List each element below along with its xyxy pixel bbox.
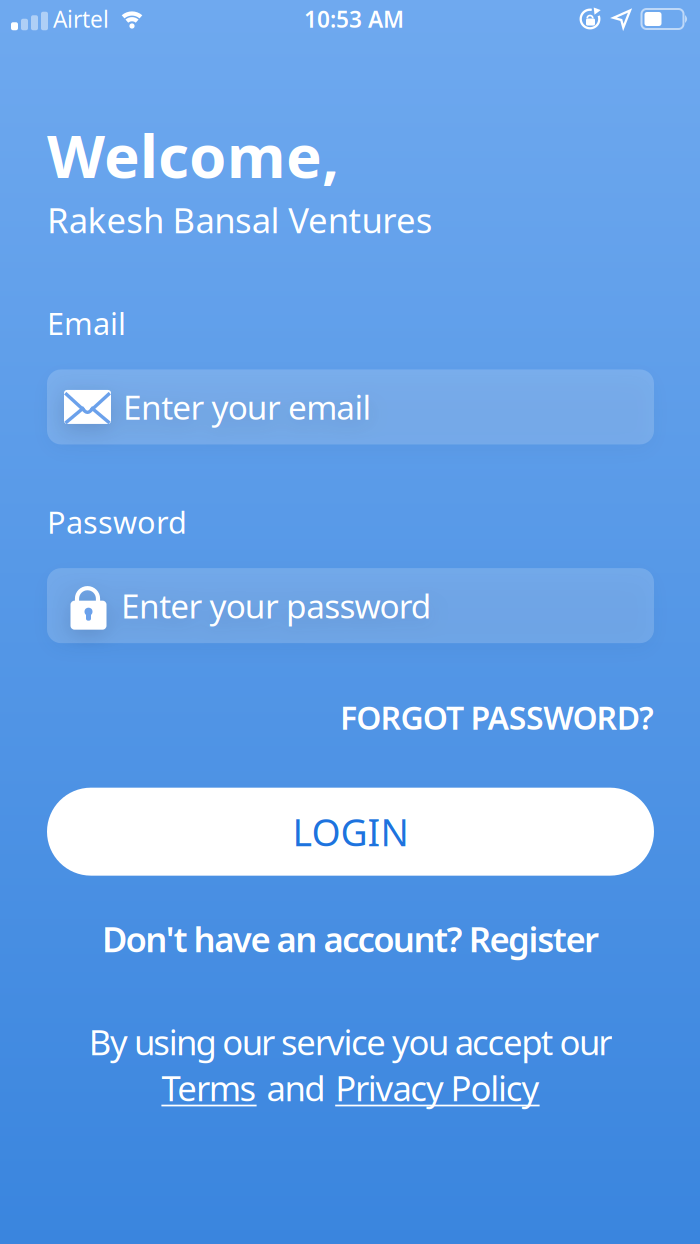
staticText: Welcome, bbox=[47, 115, 339, 195]
button[interactable]: LOGIN bbox=[47, 788, 654, 876]
button[interactable]: Enter your password bbox=[47, 568, 654, 643]
staticText: Enter your email bbox=[123, 385, 371, 429]
button[interactable]: Don't have an account? Register bbox=[102, 916, 599, 962]
staticText: Email bbox=[47, 303, 126, 343]
staticText: Terms bbox=[161, 1065, 257, 1111]
staticText: Don't have an account? Register bbox=[102, 916, 599, 962]
staticText: LOGIN bbox=[292, 807, 408, 856]
staticText: Airtel bbox=[53, 4, 109, 34]
staticText: Rakesh Bansal Ventures bbox=[47, 197, 433, 243]
button[interactable]: Enter your email bbox=[47, 369, 654, 444]
staticText: and bbox=[267, 1065, 325, 1111]
button[interactable]: Privacy Policy bbox=[335, 1065, 540, 1111]
staticText: 10:53 AM bbox=[304, 4, 404, 34]
staticText: Privacy Policy bbox=[335, 1065, 540, 1111]
staticText: Password bbox=[47, 501, 187, 542]
staticText: FORGOT PASSWORD? bbox=[340, 696, 654, 739]
button[interactable]: FORGOT PASSWORD? bbox=[340, 696, 654, 739]
staticText: Enter your password bbox=[121, 583, 432, 628]
staticText: By using our service you accept our bbox=[89, 1019, 612, 1065]
button[interactable]: Terms bbox=[161, 1065, 257, 1111]
